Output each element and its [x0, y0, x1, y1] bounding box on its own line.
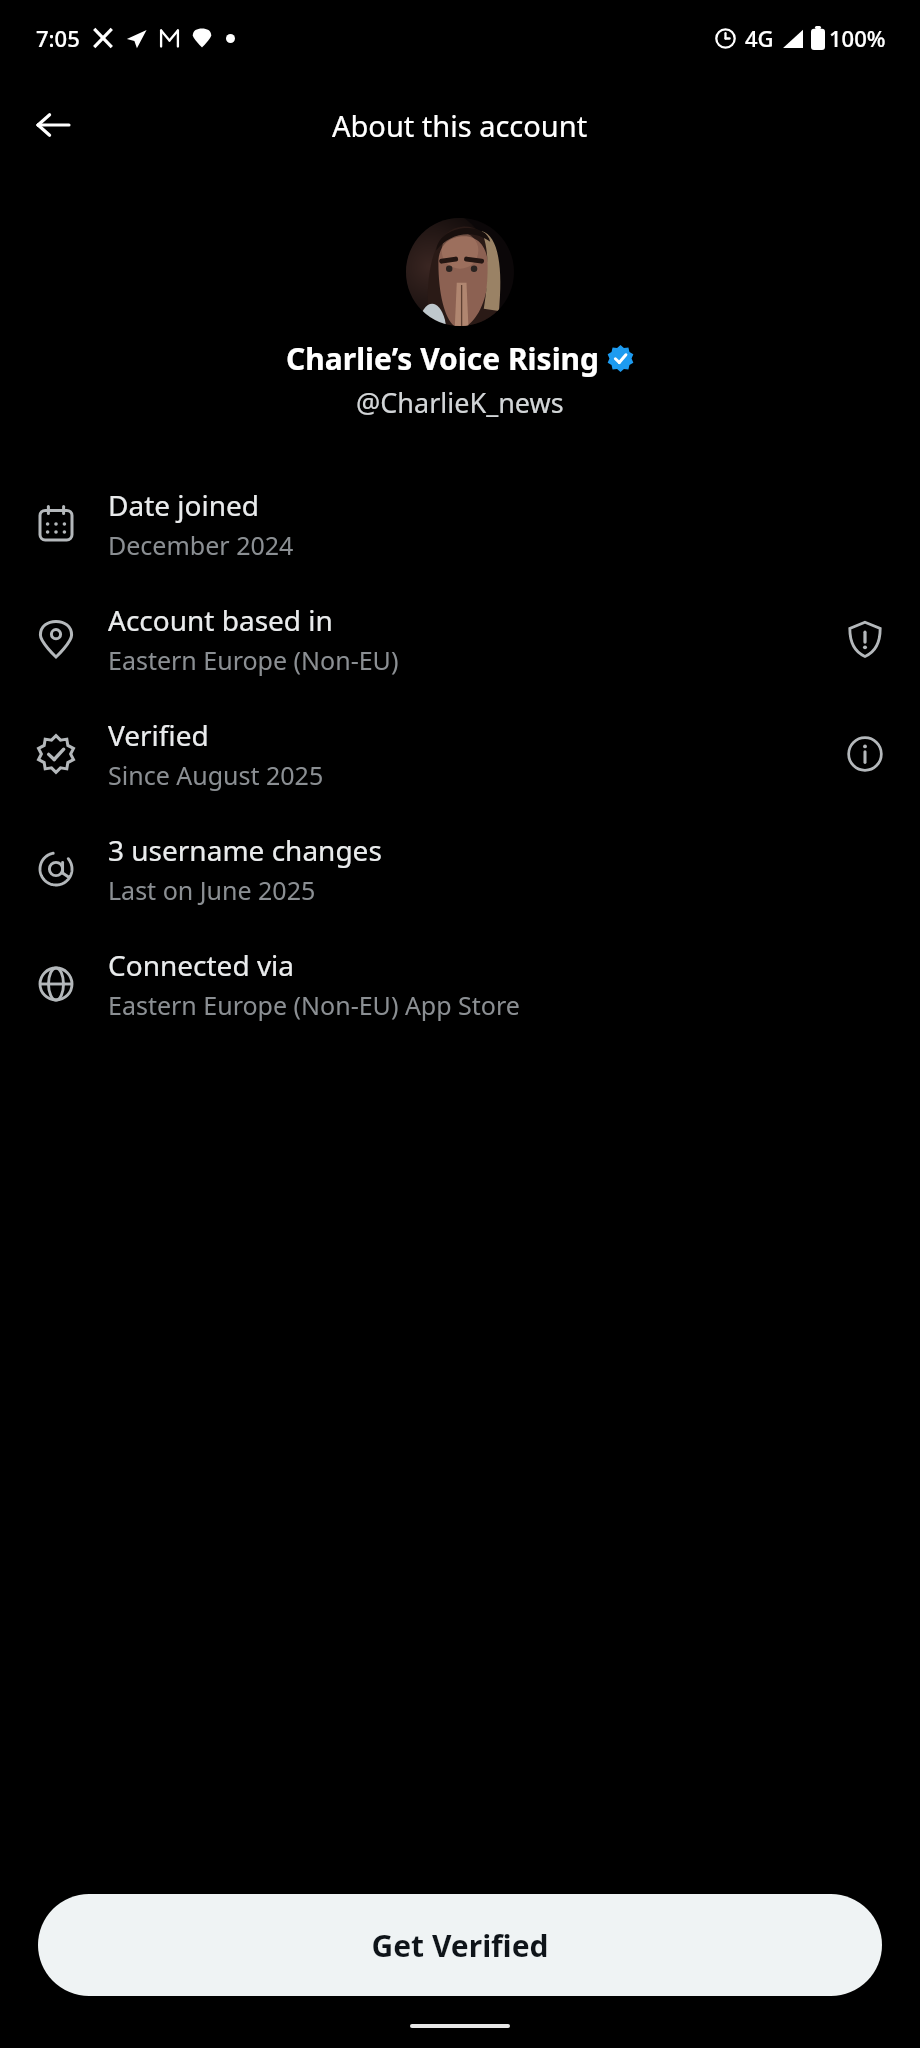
- staticText: Connected via: [108, 946, 295, 984]
- button[interactable]: Date joined: [0, 466, 920, 581]
- staticText: Get Verified: [371, 1925, 549, 1966]
- staticText: 3 username changes: [108, 831, 382, 869]
- staticText: Date joined: [108, 486, 260, 524]
- button[interactable]: Account based in: [0, 581, 920, 696]
- staticText: Eastern Europe (Non-EU) App Store: [108, 988, 520, 1022]
- staticText: Since August 2025: [108, 758, 324, 792]
- staticText: Verified: [108, 716, 209, 754]
- staticText: About this account: [332, 106, 588, 145]
- staticText: Account based in: [108, 601, 333, 639]
- staticText: 7:05: [36, 23, 80, 53]
- button[interactable]: Get Verified: [38, 1894, 882, 1996]
- button[interactable]: More about verification: [838, 727, 892, 781]
- staticText: @CharlieK_news: [356, 384, 564, 421]
- button[interactable]: Verified: [0, 696, 920, 811]
- button[interactable]: Connected via: [0, 926, 920, 1041]
- button[interactable]: Back: [22, 94, 84, 156]
- staticText: December 2024: [108, 528, 294, 562]
- staticText: Charlie’s Voice Rising: [286, 338, 600, 379]
- button[interactable]: 3 username changes: [0, 811, 920, 926]
- staticText: 4G: [745, 23, 774, 53]
- staticText: Last on June 2025: [108, 873, 316, 907]
- staticText: Eastern Europe (Non-EU): [108, 643, 399, 677]
- staticText: 100%: [829, 23, 886, 53]
- button[interactable]: More about account location: [838, 612, 892, 666]
